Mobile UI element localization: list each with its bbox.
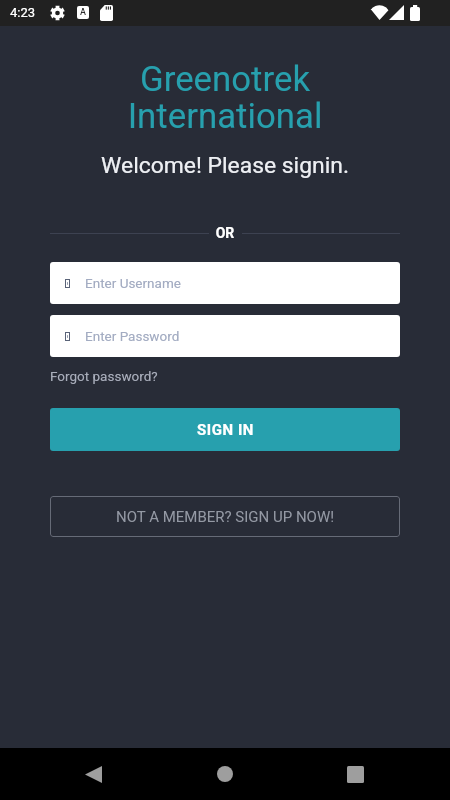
staticText: 4:23 <box>10 5 36 20</box>
staticText: A <box>80 7 86 18</box>
staticText: NOT A MEMBER? SIGN UP NOW! <box>116 508 335 526</box>
button[interactable]: Back <box>69 748 117 800</box>
staticText: Greenotrek International <box>0 59 450 137</box>
button[interactable]: NOT A MEMBER? SIGN UP NOW! <box>50 496 400 537</box>
button[interactable]: Home <box>201 748 249 800</box>
staticText: Enter Username <box>85 275 181 291</box>
button[interactable]: Enter Password <box>50 315 400 357</box>
staticText: Enter Password <box>85 328 180 344</box>
button[interactable]: Forgot password? <box>50 368 158 384</box>
button[interactable]: SIGN IN <box>50 408 400 451</box>
staticText: SIGN IN <box>197 421 254 439</box>
button[interactable]: Enter Username <box>50 262 400 304</box>
staticText: Welcome! Please signin. <box>0 152 450 179</box>
staticText: OR <box>0 225 450 241</box>
button[interactable]: Recent apps <box>331 748 379 800</box>
